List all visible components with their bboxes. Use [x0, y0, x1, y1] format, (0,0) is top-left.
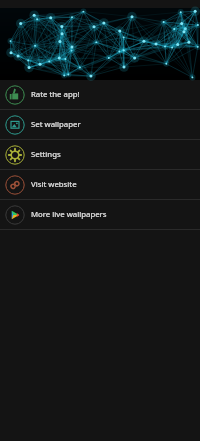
other: More live wallpapers — [5, 205, 25, 225]
button[interactable]: Settings — [0, 140, 200, 169]
other: Set wallpaper — [5, 115, 25, 135]
other: Visit website — [5, 175, 25, 195]
staticText: More live wallpapers — [31, 209, 107, 220]
staticText: Visit website — [31, 179, 77, 190]
button[interactable]: More live wallpapers — [0, 200, 200, 229]
button[interactable]: Set wallpaper — [0, 110, 200, 139]
staticText: Rate the app! — [31, 89, 80, 100]
other: Rate the app — [5, 85, 25, 105]
other: Settings — [5, 145, 25, 165]
staticText: Set wallpaper — [31, 119, 81, 130]
staticText: Settings — [31, 149, 61, 160]
button[interactable]: Visit website — [0, 170, 200, 199]
button[interactable]: Rate the app — [0, 80, 200, 109]
